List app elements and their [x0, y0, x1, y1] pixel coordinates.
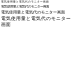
staticText: 電気使用量と電気代のモニター画面: [1, 0, 49, 3]
staticText: 電気使用量と電気代のモニター画面: [1, 4, 49, 9]
staticText: 電気使用量と電気代のモニター画面: [1, 16, 71, 27]
staticText: 電気使用量と電気代のモニター画面: [1, 10, 65, 15]
